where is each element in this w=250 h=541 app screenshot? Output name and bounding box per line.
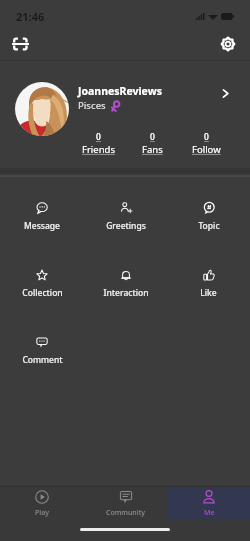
button[interactable]: Message bbox=[0, 202, 84, 232]
button[interactable]: Interaction bbox=[84, 269, 167, 299]
button[interactable]: Community bbox=[84, 487, 167, 520]
staticText: 0 bbox=[96, 131, 101, 143]
staticText: Community bbox=[106, 508, 146, 518]
staticText: JoannesReviews bbox=[78, 84, 162, 98]
button[interactable]: Collection bbox=[0, 269, 84, 299]
staticText: Like bbox=[200, 287, 217, 299]
staticText: Collection bbox=[22, 287, 63, 299]
staticText: Friends bbox=[82, 143, 115, 156]
staticText: Pisces bbox=[78, 99, 106, 112]
staticText: 21:46 bbox=[16, 9, 45, 24]
staticText: Follow bbox=[192, 143, 221, 156]
staticText: Message bbox=[24, 220, 60, 232]
button[interactable]: Play bbox=[0, 487, 84, 520]
button[interactable]: Greetings bbox=[84, 202, 167, 232]
staticText: Greetings bbox=[106, 220, 146, 232]
button[interactable]: Open profile bbox=[214, 82, 236, 104]
staticText: Comment bbox=[22, 354, 63, 366]
button[interactable]: 0 bbox=[71, 131, 125, 156]
button[interactable]: 0 bbox=[179, 131, 233, 156]
staticText: Play bbox=[35, 508, 49, 518]
staticText: Topic bbox=[198, 220, 220, 232]
button[interactable]: Topic bbox=[167, 202, 250, 232]
staticText: 0 bbox=[204, 131, 209, 143]
staticText: Interaction bbox=[103, 287, 149, 299]
button[interactable]: Me bbox=[167, 487, 250, 520]
button[interactable]: Like bbox=[167, 269, 250, 299]
staticText: Fans bbox=[142, 143, 163, 156]
button[interactable]: Settings bbox=[212, 28, 243, 59]
button[interactable]: 0 bbox=[125, 131, 179, 156]
button[interactable]: Comment bbox=[0, 336, 84, 366]
staticText: 0 bbox=[150, 131, 155, 143]
staticText: Me bbox=[204, 508, 215, 518]
button[interactable]: Avatar bbox=[15, 82, 69, 136]
button[interactable]: Scan bbox=[5, 28, 36, 59]
